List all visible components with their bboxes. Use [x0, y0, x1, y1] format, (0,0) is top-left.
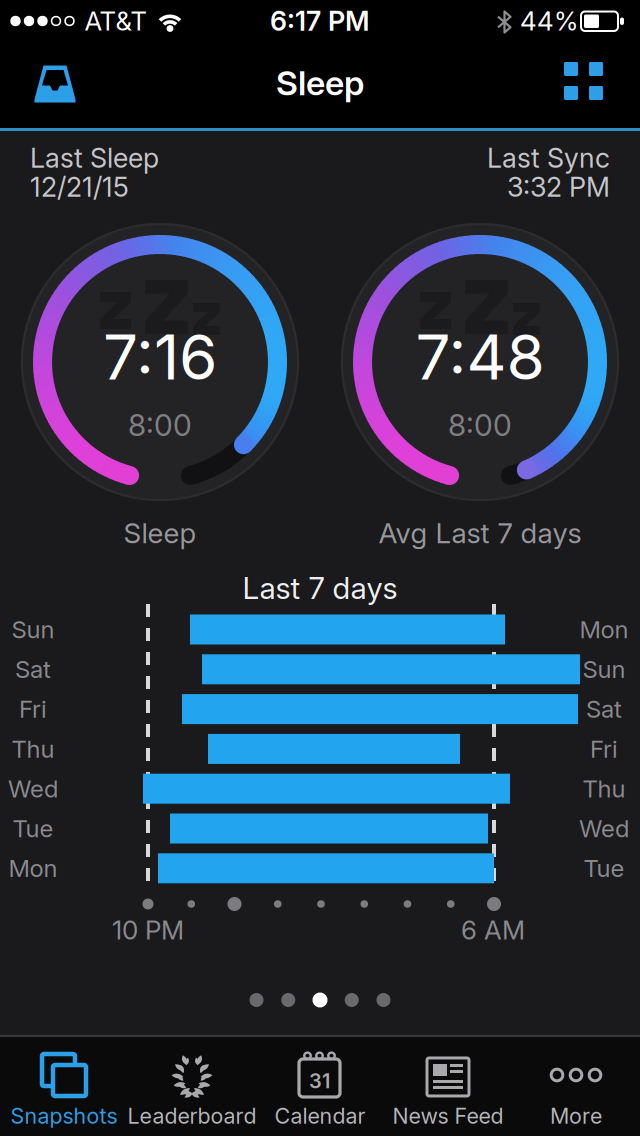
staticText: 8:00: [128, 407, 192, 443]
staticText: Snapshots: [10, 1103, 117, 1129]
staticText: Tue: [583, 854, 624, 883]
button[interactable]: Apps: [555, 55, 611, 107]
staticText: 44%: [520, 5, 578, 37]
staticText: Leaderboard: [127, 1103, 256, 1129]
staticText: 6 AM: [461, 914, 525, 946]
staticText: Wed: [579, 814, 629, 843]
staticText: Mon: [8, 854, 57, 883]
button[interactable]: 31: [256, 1038, 384, 1132]
staticText: 7:48: [415, 319, 544, 394]
button[interactable]: Leaderboard: [128, 1038, 256, 1132]
staticText: Thu: [582, 774, 625, 803]
button[interactable]: Inbox: [27, 56, 83, 108]
staticText: Tue: [12, 814, 53, 843]
staticText: Sleep: [276, 62, 364, 103]
staticText: Fri: [590, 734, 618, 763]
button[interactable]: News Feed: [384, 1038, 512, 1132]
staticText: News Feed: [392, 1103, 503, 1129]
staticText: 12/21/15: [30, 171, 129, 203]
staticText: AT&T: [84, 5, 147, 37]
staticText: Wed: [8, 774, 58, 803]
staticText: Fri: [19, 695, 47, 724]
staticText: 6:17 PM: [270, 5, 370, 37]
staticText: 10 PM: [112, 914, 184, 946]
staticText: 8:00: [448, 407, 512, 443]
staticText: 7:16: [103, 319, 217, 394]
staticText: Sat: [586, 695, 622, 724]
staticText: Sat: [15, 655, 51, 684]
staticText: Last Sleep: [30, 142, 159, 174]
staticText: 31: [309, 1069, 330, 1093]
button[interactable]: Snapshots: [0, 1038, 128, 1132]
staticText: Calendar: [274, 1103, 365, 1129]
staticText: Sun: [11, 615, 54, 644]
staticText: Last 7 days: [242, 570, 397, 606]
staticText: Last Sync: [487, 142, 610, 174]
staticText: 3:32 PM: [507, 171, 610, 203]
staticText: Thu: [11, 734, 54, 763]
staticText: Sun: [582, 655, 625, 684]
staticText: Sleep: [123, 516, 196, 550]
button[interactable]: More: [512, 1038, 640, 1132]
staticText: Mon: [579, 615, 628, 644]
staticText: More: [550, 1103, 602, 1129]
staticText: Avg Last 7 days: [378, 516, 581, 550]
